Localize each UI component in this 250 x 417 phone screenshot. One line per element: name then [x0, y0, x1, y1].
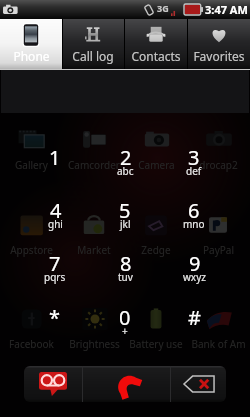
button[interactable]: 2: [94, 144, 156, 192]
button[interactable]: Delete: [171, 366, 226, 402]
button[interactable]: 4: [24, 197, 86, 245]
staticText: 3G: [157, 2, 169, 14]
staticText: Battery use: [129, 337, 183, 351]
staticText: Gallery: [15, 158, 48, 172]
staticText: Bank of Am: [191, 337, 246, 351]
staticText: 4: [50, 197, 62, 224]
staticText: drocap2: [199, 158, 238, 172]
button[interactable]: 5: [94, 197, 156, 245]
staticText: PayPal: [203, 243, 234, 257]
staticText: mno: [183, 217, 205, 231]
staticText: wxyz: [183, 270, 206, 284]
staticText: 0: [119, 304, 131, 331]
staticText: Facebook: [9, 337, 54, 351]
button[interactable]: Contacts: [124, 19, 187, 69]
staticText: 3:47 AM: [205, 2, 248, 17]
button[interactable]: 7: [24, 250, 86, 298]
staticText: Camcorder: [68, 158, 120, 172]
staticText: Call log: [72, 48, 114, 64]
staticText: abc: [117, 164, 134, 178]
staticText: ghi: [48, 217, 63, 231]
staticText: Favorites: [193, 48, 245, 64]
button[interactable]: 0: [94, 304, 156, 352]
staticText: Zedge: [141, 243, 171, 257]
staticText: jkl: [120, 217, 131, 231]
staticText: Appstore: [10, 243, 53, 257]
staticText: Phone: [13, 48, 50, 64]
button[interactable]: 8: [94, 250, 156, 298]
button[interactable]: 6: [163, 197, 225, 245]
staticText: #: [188, 304, 201, 331]
button[interactable]: 1: [24, 144, 86, 192]
staticText: 6: [188, 197, 200, 224]
staticText: *: [49, 304, 61, 331]
staticText: 5: [119, 197, 131, 224]
staticText: Brightness: [69, 337, 120, 351]
button[interactable]: Voicemail: [24, 366, 82, 402]
staticText: pqrs: [44, 270, 66, 284]
staticText: 9: [189, 250, 201, 277]
button[interactable]: Call log: [62, 19, 124, 69]
button[interactable]: 9: [163, 250, 225, 298]
staticText: Contacts: [131, 48, 181, 64]
staticText: tuv: [118, 270, 133, 284]
button[interactable]: *: [24, 304, 86, 352]
button[interactable]: Call: [83, 366, 170, 402]
staticText: 1: [49, 144, 61, 171]
staticText: 2: [120, 144, 132, 171]
button[interactable]: Favorites: [187, 19, 250, 69]
staticText: 7: [49, 250, 61, 277]
staticText: def: [186, 164, 202, 178]
staticText: 3: [188, 144, 200, 171]
staticText: Market: [77, 243, 111, 257]
button[interactable]: #: [163, 304, 225, 352]
button[interactable]: Phone: [0, 19, 62, 69]
staticText: +: [122, 324, 128, 338]
staticText: Camera: [138, 158, 175, 172]
button[interactable]: 3: [163, 144, 225, 192]
staticText: 8: [120, 250, 132, 277]
